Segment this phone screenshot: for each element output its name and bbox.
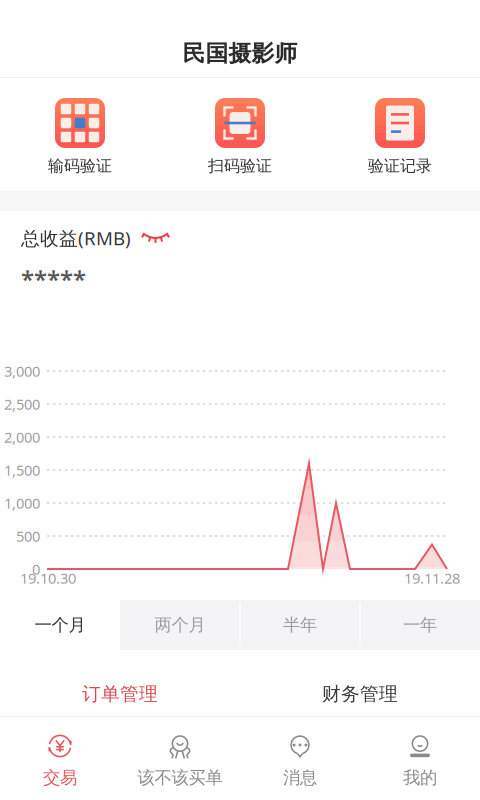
button[interactable]: 财务管理 — [240, 664, 480, 724]
button[interactable]: 半年 — [240, 600, 360, 650]
staticText: 500 — [16, 526, 40, 546]
button[interactable]: 一年 — [360, 600, 480, 650]
staticText: 总收益(RMB) — [21, 226, 131, 250]
staticText: 3,000 — [4, 361, 40, 381]
staticText: ***** — [21, 263, 86, 295]
staticText: 一年 — [403, 614, 437, 636]
staticText: 2,500 — [4, 394, 40, 414]
button[interactable]: 订单管理 — [0, 664, 240, 724]
staticText: 民国摄影师 — [182, 40, 297, 67]
staticText: 财务管理 — [322, 682, 398, 705]
button[interactable]: 该不该买单 — [120, 716, 240, 800]
button[interactable]: 输码验证 — [0, 75, 160, 189]
staticText: 半年 — [283, 614, 317, 636]
staticText: 0 — [32, 559, 40, 579]
staticText: 一个月 — [34, 614, 85, 636]
button[interactable]: 消息 — [240, 716, 360, 800]
staticText: 我的 — [403, 767, 437, 788]
button[interactable]: 显示收益 — [142, 232, 169, 244]
staticText: 订单管理 — [82, 682, 158, 705]
staticText: 2,000 — [4, 427, 40, 447]
button[interactable]: 两个月 — [120, 600, 240, 650]
staticText: 1,500 — [4, 460, 40, 480]
staticText: 验证记录 — [368, 156, 432, 176]
button[interactable]: 交易 — [0, 716, 120, 800]
button[interactable]: 我的 — [360, 716, 480, 800]
staticText: 交易 — [43, 767, 77, 788]
button[interactable]: 扫码验证 — [160, 75, 320, 189]
button[interactable]: 验证记录 — [320, 75, 480, 189]
staticText: 19.10.30 — [20, 568, 76, 588]
staticText: 两个月 — [154, 614, 205, 636]
button[interactable]: 一个月 — [0, 600, 120, 650]
staticText: 输码验证 — [48, 156, 112, 176]
staticText: 扫码验证 — [208, 156, 272, 176]
staticText: 19.11.28 — [404, 568, 460, 588]
staticText: 该不该买单 — [137, 767, 222, 788]
staticText: 1,000 — [4, 493, 40, 513]
staticText: 消息 — [283, 767, 317, 788]
